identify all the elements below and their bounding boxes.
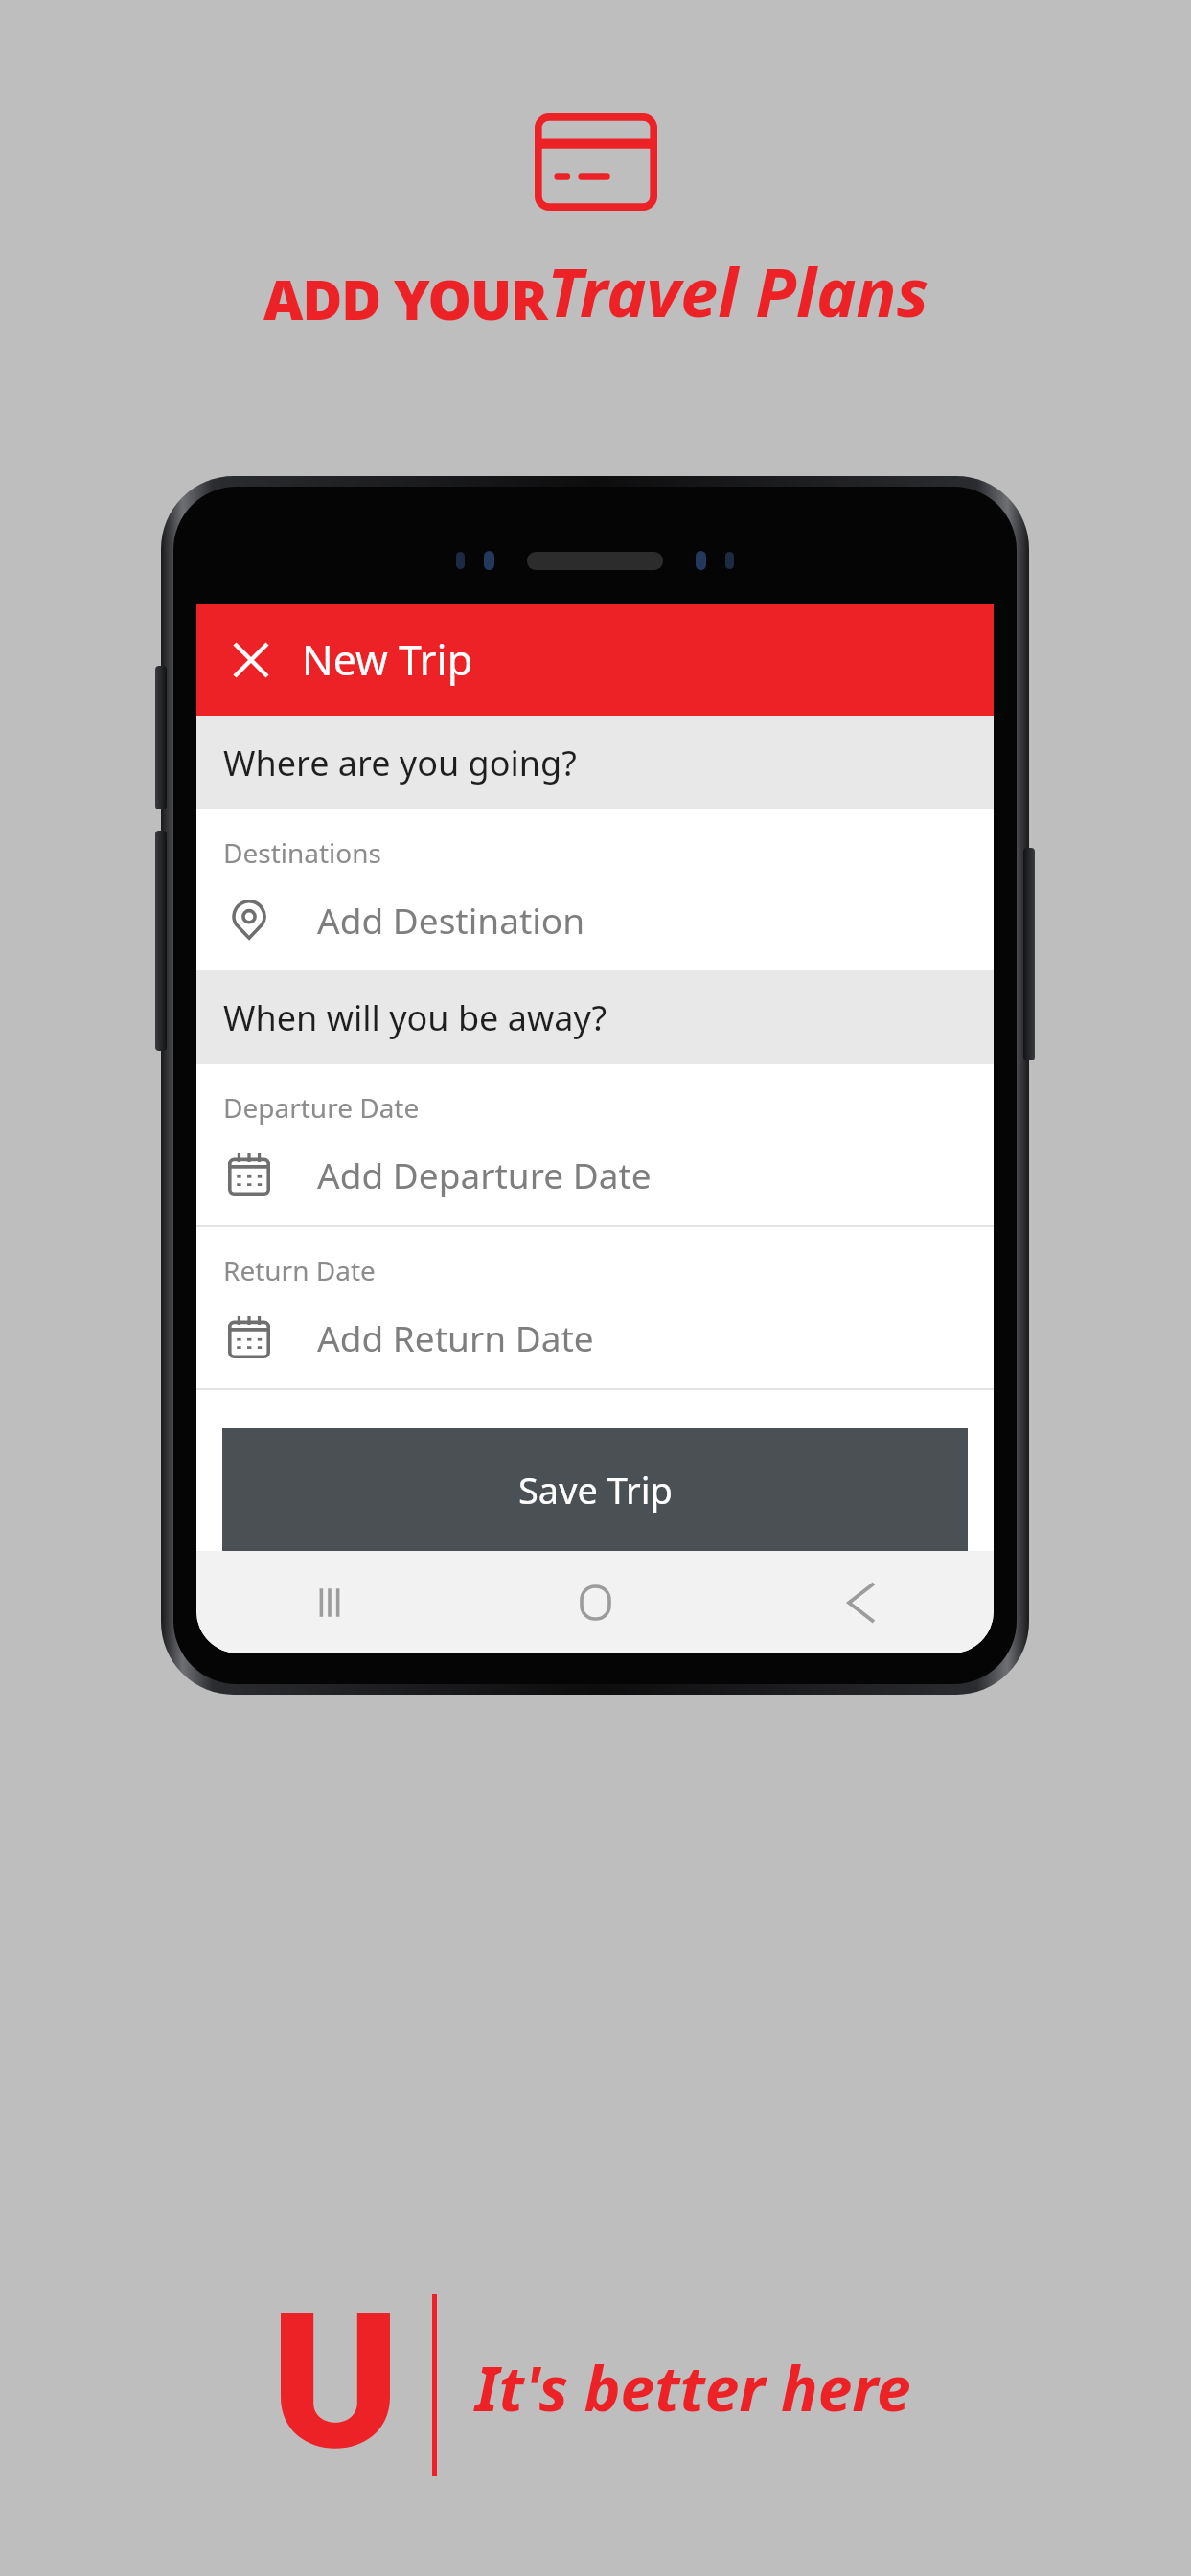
button[interactable]: Back bbox=[728, 1551, 994, 1653]
button[interactable]: Home bbox=[463, 1551, 728, 1653]
staticText: Return Date bbox=[223, 1252, 376, 1288]
button[interactable]: Departure Date bbox=[196, 1064, 994, 1225]
button[interactable]: Recents bbox=[196, 1551, 463, 1653]
staticText: Where are you going? bbox=[223, 740, 577, 786]
staticText: It's better here bbox=[475, 2346, 911, 2429]
staticText: When will you be away? bbox=[223, 994, 607, 1041]
button[interactable]: Save Trip bbox=[222, 1428, 968, 1551]
staticText: Departure Date bbox=[223, 1089, 420, 1126]
button[interactable]: Return Date bbox=[196, 1227, 994, 1388]
staticText: New Trip bbox=[302, 631, 473, 688]
staticText: Destinations bbox=[223, 834, 381, 871]
button[interactable]: Close bbox=[221, 630, 281, 690]
staticText: Save Trip bbox=[518, 1465, 673, 1515]
staticText: Add Departure Date bbox=[317, 1151, 652, 1198]
staticText: Travel Plans bbox=[547, 245, 928, 336]
staticText: Add Return Date bbox=[317, 1313, 594, 1361]
staticText: Add Destination bbox=[317, 896, 585, 944]
button[interactable]: Destinations bbox=[196, 809, 994, 970]
staticText: ADD YOUR bbox=[263, 262, 547, 336]
